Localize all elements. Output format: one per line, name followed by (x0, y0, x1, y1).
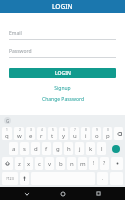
staticText: 6 (63, 128, 65, 132)
button[interactable]: Google search (4, 117, 11, 124)
button[interactable]: j (75, 142, 84, 155)
staticText: x (27, 160, 31, 168)
staticText: 5 (52, 128, 54, 132)
staticText: u (73, 132, 77, 140)
button[interactable]: l (97, 142, 106, 155)
button[interactable]: g (53, 142, 62, 155)
button[interactable]: LOGIN (9, 68, 116, 78)
staticText: s (23, 145, 26, 153)
staticText: z (18, 160, 21, 168)
staticText: q (5, 132, 9, 140)
button[interactable]: s (20, 142, 29, 155)
button[interactable]: v (45, 157, 54, 170)
button[interactable]: 6 (59, 127, 68, 140)
staticText: 3 (30, 128, 32, 132)
staticText: d (34, 145, 38, 153)
button[interactable]: Shift (2, 157, 13, 170)
staticText: ?123 (6, 176, 14, 181)
button[interactable]: 8 (81, 127, 90, 140)
staticText: LOGIN (55, 70, 71, 77)
button[interactable]: h (64, 142, 73, 155)
staticText: w (17, 132, 22, 140)
button[interactable]: k (86, 142, 95, 155)
button[interactable]: 1 (2, 127, 12, 140)
staticText: k (89, 145, 93, 153)
button[interactable]: Recent apps (90, 187, 106, 200)
staticText: 2 (19, 128, 21, 132)
staticText: Change Password (42, 96, 84, 103)
button[interactable]: 7 (70, 127, 79, 140)
button[interactable]: ! (89, 157, 98, 170)
button[interactable]: 4 (37, 127, 46, 140)
staticText: p (106, 132, 110, 140)
staticText: c (38, 160, 41, 168)
staticText: 7 (74, 128, 76, 132)
staticText: Signup (54, 85, 71, 92)
staticText: t (51, 132, 54, 140)
staticText: y (62, 132, 66, 140)
staticText: e (29, 132, 33, 140)
button[interactable]: n (67, 157, 76, 170)
button[interactable]: x (25, 157, 33, 170)
button[interactable]: m (78, 157, 87, 170)
button[interactable]: Enter (109, 142, 123, 155)
button[interactable]: Change Password (9, 96, 116, 103)
button[interactable]: Home (55, 187, 71, 200)
button[interactable]: d (31, 142, 40, 155)
staticText: a (12, 145, 16, 153)
staticText: n (70, 160, 74, 168)
button[interactable]: Email (9, 30, 116, 40)
staticText: i (85, 132, 87, 140)
button[interactable]: 2 (14, 127, 24, 140)
button[interactable]: a (9, 142, 18, 155)
staticText: g (56, 145, 60, 153)
button[interactable]: Delete (111, 157, 123, 170)
staticText: 0 (107, 128, 109, 132)
button[interactable]: Voice input (20, 172, 29, 185)
staticText: 1 (6, 128, 8, 132)
staticText: f (45, 145, 48, 153)
button[interactable]: z (15, 157, 23, 170)
button[interactable]: Signup (9, 85, 116, 92)
staticText: . (102, 175, 104, 182)
staticText: l (101, 145, 103, 153)
staticText: G (6, 118, 10, 124)
staticText: h (67, 145, 71, 153)
button[interactable]: 3 (26, 127, 35, 140)
staticText: 8 (85, 128, 87, 132)
button[interactable]: c (35, 157, 43, 170)
staticText: 9 (96, 128, 98, 132)
staticText: j (79, 145, 81, 153)
staticText: Password (9, 48, 32, 55)
button[interactable]: . (97, 172, 108, 185)
button[interactable]: Backspace (114, 127, 123, 140)
staticText: 4 (41, 128, 43, 132)
staticText: ! (93, 160, 95, 167)
button[interactable]: Back (19, 187, 35, 200)
staticText: r (40, 132, 43, 140)
button[interactable]: ?123 (2, 172, 18, 185)
staticText: m (80, 160, 86, 168)
button[interactable]: Password (9, 48, 116, 58)
button[interactable]: 0 (103, 127, 112, 140)
staticText: o (95, 132, 99, 140)
staticText: ? (103, 160, 106, 167)
staticText: LOGIN (52, 2, 73, 11)
button[interactable]: b (56, 157, 65, 170)
staticText: b (59, 160, 63, 168)
button[interactable]: f (42, 142, 51, 155)
staticText: Email (9, 30, 22, 37)
button[interactable]: 5 (48, 127, 57, 140)
button[interactable]: 9 (92, 127, 101, 140)
button[interactable]: ? (100, 157, 109, 170)
staticText: v (48, 160, 52, 168)
